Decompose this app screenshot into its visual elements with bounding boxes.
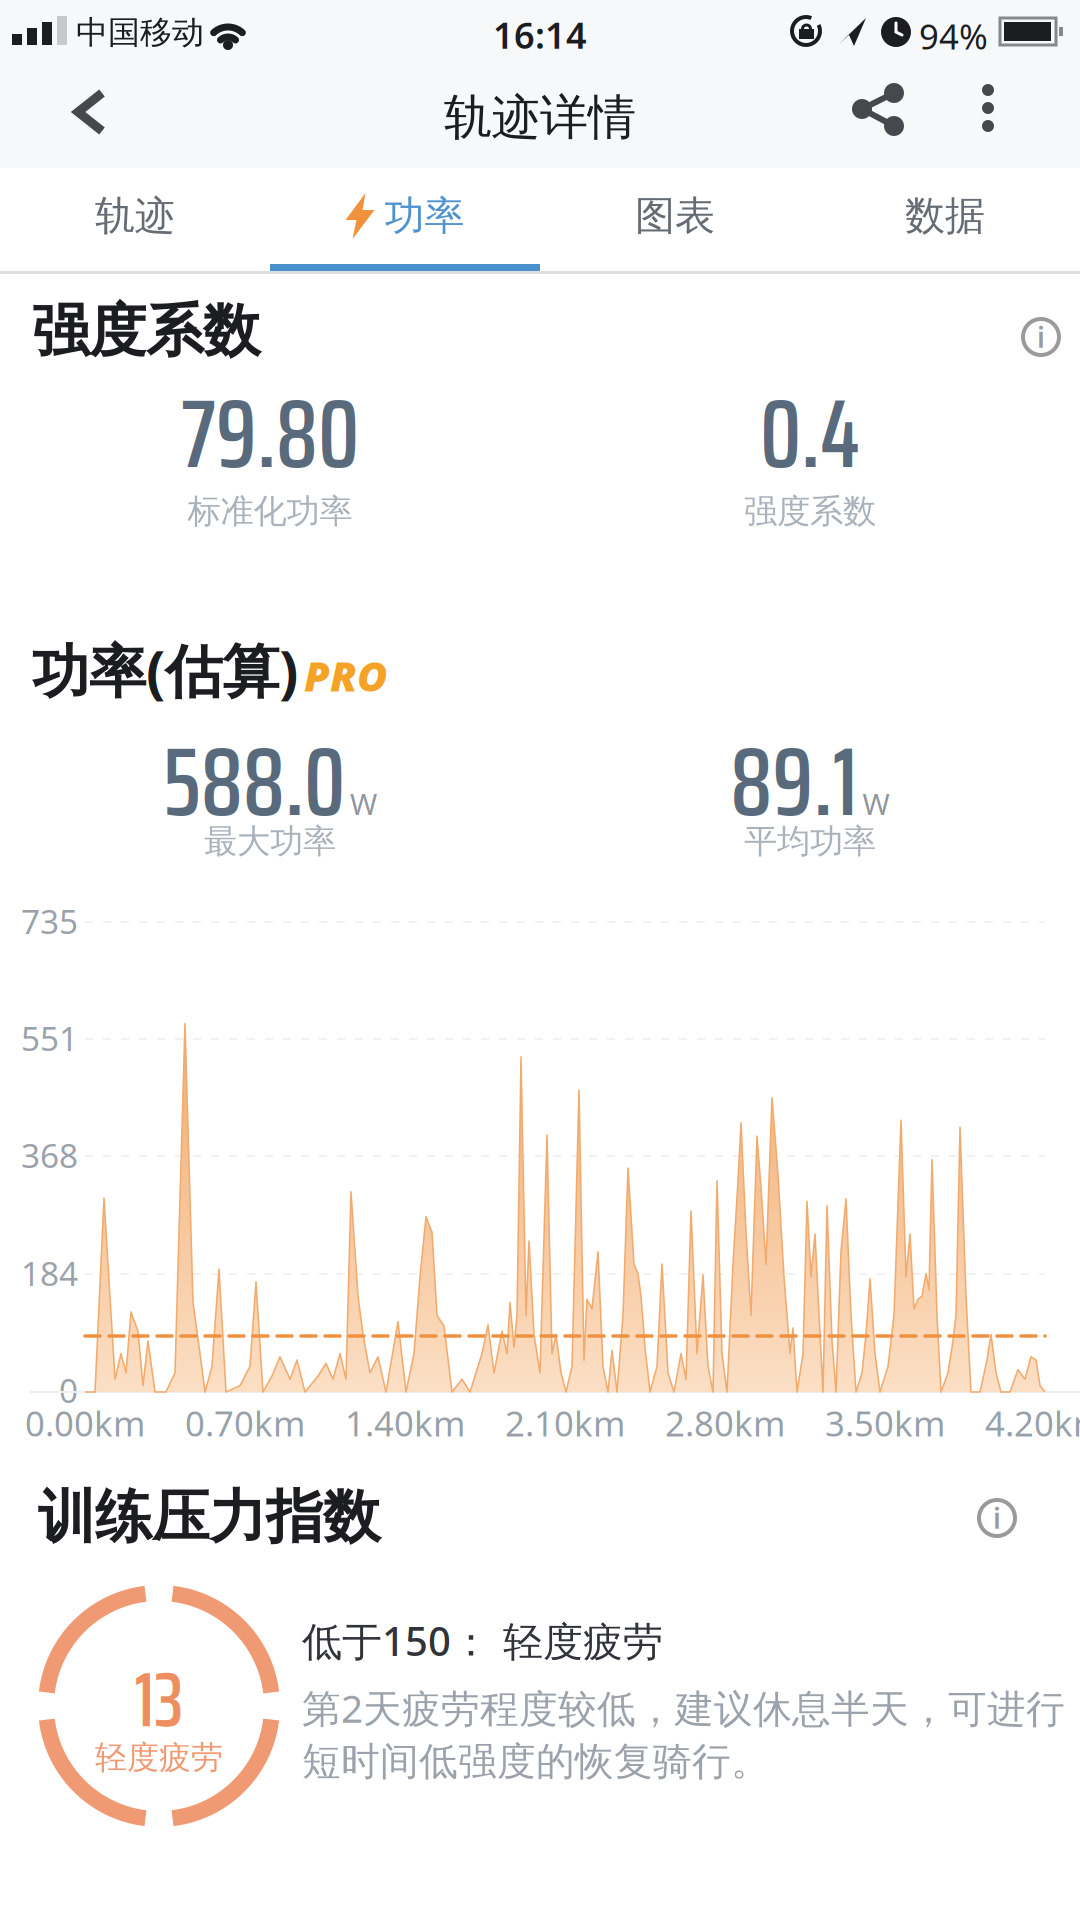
staticText: 0: [59, 1368, 78, 1412]
staticText: 功率(估算): [32, 632, 298, 708]
staticText: 标准化功率: [187, 491, 352, 532]
staticText: 短时间低强度的恢复骑行。: [302, 1738, 770, 1785]
staticText: 551: [21, 1016, 78, 1060]
staticText: 数据: [905, 191, 985, 240]
staticText: 588.0: [163, 706, 345, 857]
staticText: 4.20km: [985, 1400, 1080, 1446]
staticText: 最大功率: [204, 821, 336, 862]
staticText: 中国移动: [76, 13, 204, 52]
staticText: 1.40km: [345, 1400, 465, 1446]
staticText: i: [993, 1499, 1001, 1537]
staticText: 训练压力指数: [38, 1482, 380, 1552]
staticText: 轻度疲劳: [95, 1738, 223, 1777]
staticText: 0.4: [760, 358, 860, 509]
button[interactable]: 数据: [810, 168, 1080, 264]
staticText: 图表: [635, 191, 715, 240]
staticText: 平均功率: [744, 821, 876, 862]
staticText: 368: [21, 1133, 78, 1177]
button[interactable]: [852, 84, 904, 136]
button[interactable]: 图表: [540, 168, 810, 264]
staticText: 89.1: [730, 706, 857, 857]
staticText: 低于150： 轻度疲劳: [302, 1614, 663, 1667]
staticText: 第2天疲劳程度较低，建议休息半天，可进行: [302, 1682, 1065, 1733]
staticText: 184: [21, 1251, 78, 1295]
staticText: 735: [21, 899, 78, 943]
staticText: 16:14: [493, 11, 587, 59]
staticText: 13: [134, 1640, 183, 1760]
button[interactable]: i: [1020, 316, 1062, 358]
staticText: 79.80: [181, 358, 359, 509]
staticText: 轨迹详情: [444, 88, 636, 147]
button[interactable]: [74, 90, 106, 134]
staticText: 0.00km: [25, 1400, 145, 1446]
staticText: 2.10km: [505, 1400, 625, 1446]
button[interactable]: [982, 84, 994, 132]
staticText: i: [1037, 318, 1045, 356]
button[interactable]: 轨迹: [0, 168, 270, 264]
staticText: 强度系数: [32, 296, 260, 366]
staticText: 功率: [384, 191, 464, 240]
staticText: W: [350, 784, 377, 823]
staticText: 轨迹: [95, 191, 175, 240]
staticText: 强度系数: [744, 491, 876, 532]
button[interactable]: 功率: [270, 168, 540, 264]
staticText: 94%: [919, 13, 988, 59]
staticText: 0.70km: [185, 1400, 305, 1446]
staticText: 2.80km: [665, 1400, 785, 1446]
staticText: 3.50km: [825, 1400, 945, 1446]
staticText: W: [862, 784, 889, 823]
staticText: PRO: [304, 648, 387, 703]
button[interactable]: i: [976, 1497, 1018, 1539]
